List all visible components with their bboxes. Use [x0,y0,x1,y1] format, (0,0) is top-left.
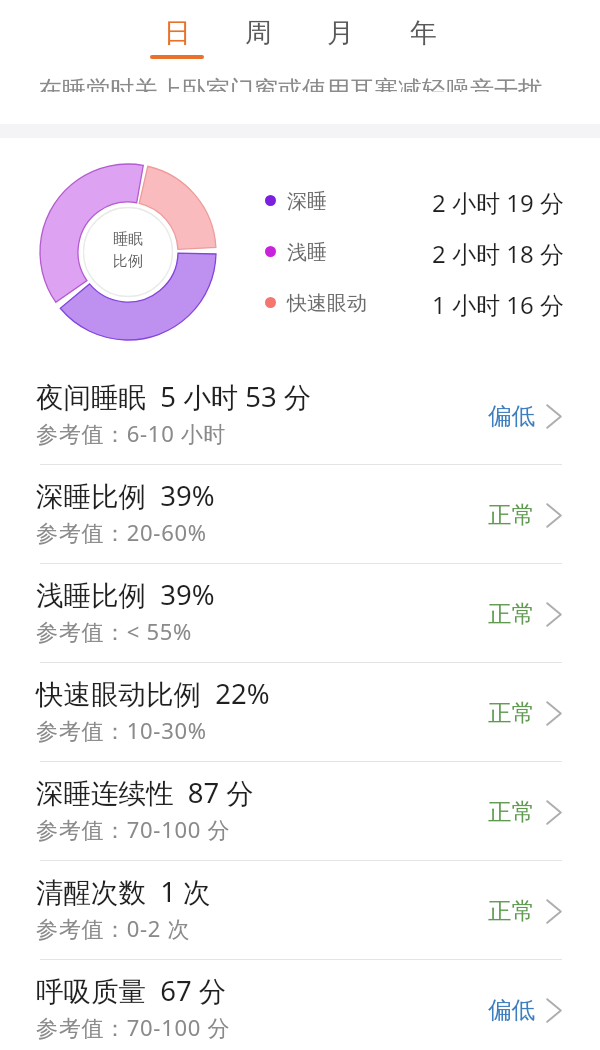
staticText: 月 [327,16,354,50]
button[interactable]: 年 [389,0,457,62]
staticText: 正常 [488,500,535,530]
staticText: 年 [410,16,437,50]
button[interactable]: 月 [306,0,374,62]
other: 查看详情 [546,404,562,429]
staticText: 正常 [488,896,535,926]
staticText: 2 小时 18 分 [259,237,564,270]
staticText: 参考值：70-100 分 [36,814,231,844]
other: 查看详情 [546,899,562,924]
staticText: 在睡觉时关上卧室门窗或使用耳塞减轻噪音干扰。 [38,75,566,92]
button[interactable]: 呼吸质量 67 分 [0,960,600,1050]
button[interactable]: 夜间睡眠 5 小时 53 分 [0,366,600,465]
staticText: 正常 [488,599,535,629]
button[interactable]: 浅睡比例 39% [0,564,600,663]
staticText: 正常 [488,797,535,827]
other: 查看详情 [546,998,562,1023]
staticText: 1 小时 16 分 [259,288,564,321]
staticText: 浅睡比例 39% [36,576,215,614]
button[interactable]: 浅睡 [259,231,569,271]
staticText: 比例 [113,252,143,271]
other: 查看详情 [546,701,562,726]
button[interactable]: 深睡 [259,180,569,220]
staticText: 夜间睡眠 5 小时 53 分 [36,378,312,416]
staticText: 2 小时 19 分 [259,186,564,219]
button[interactable]: 清醒次数 1 次 [0,861,600,960]
staticText: 快速眼动 [287,291,367,316]
button[interactable]: 深睡比例 39% [0,465,600,564]
staticText: 参考值：20-60% [36,517,207,547]
button[interactable]: 快速眼动比例 22% [0,663,600,762]
staticText: 参考值：< 55% [36,616,193,646]
button[interactable]: 周 [224,0,292,62]
staticText: 参考值：0-2 次 [36,913,191,943]
other: 查看详情 [546,602,562,627]
staticText: 睡眠 [113,230,143,249]
staticText: 呼吸质量 67 分 [36,972,227,1010]
staticText: 深睡连续性 87 分 [36,774,254,812]
button[interactable]: 日 [143,0,211,62]
staticText: 日 [164,16,191,50]
staticText: 参考值：10-30% [36,715,207,745]
staticText: 快速眼动比例 22% [36,675,270,713]
staticText: 深睡比例 39% [36,477,215,515]
other: 查看详情 [546,503,562,528]
staticText: 正常 [488,698,535,728]
staticText: 深睡 [287,189,327,214]
staticText: 周 [245,16,272,50]
other: 睡眠比例图 [38,162,218,342]
staticText: 参考值：6-10 小时 [36,418,227,448]
staticText: 参考值：70-100 分 [36,1012,231,1042]
button[interactable]: 快速眼动 [259,282,569,322]
staticText: 偏低 [488,995,535,1025]
staticText: 清醒次数 1 次 [36,873,211,911]
button[interactable]: 深睡连续性 87 分 [0,762,600,861]
staticText: 偏低 [488,401,535,431]
staticText: 浅睡 [287,240,327,265]
other: 查看详情 [546,800,562,825]
